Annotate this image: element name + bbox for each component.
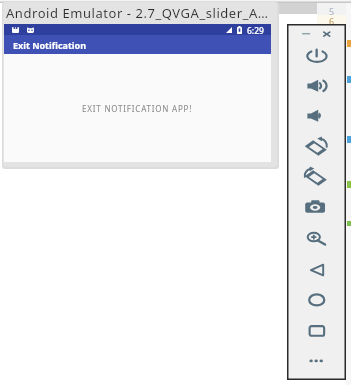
staticText: EXIT NOTIFICATION APP! <box>82 103 193 114</box>
button[interactable]: Exit Notification <box>4 35 271 54</box>
button[interactable]: Screenshot <box>305 198 327 218</box>
staticText: 6:29 <box>247 25 264 36</box>
staticText: 6 <box>329 15 335 27</box>
button[interactable]: Overview <box>305 321 327 341</box>
staticText: 5 <box>329 5 335 17</box>
button[interactable]: Home <box>305 290 327 310</box>
button[interactable]: Power <box>305 46 327 66</box>
button[interactable]: Volume down <box>305 106 327 126</box>
button[interactable]: Minimize <box>296 27 314 41</box>
staticText: Exit Notification <box>13 39 86 51</box>
button[interactable]: Rotate right <box>305 168 327 188</box>
button[interactable]: Volume up <box>305 76 327 96</box>
button[interactable]: Rotate left <box>305 138 327 158</box>
button[interactable]: Zoom in <box>305 229 327 249</box>
button[interactable]: Back <box>305 260 327 280</box>
button[interactable]: More <box>305 351 327 371</box>
staticText: Android Emulator - 2.7_QVGA_slider_A… <box>6 4 269 22</box>
button[interactable]: Close <box>318 27 336 41</box>
